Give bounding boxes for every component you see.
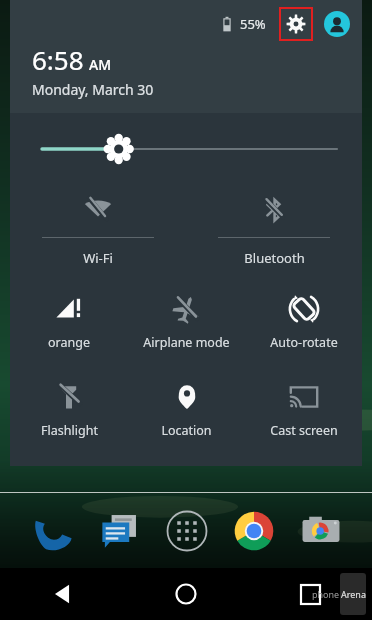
button[interactable]: orange	[10, 280, 128, 368]
button[interactable]: Phone	[18, 501, 86, 561]
staticText: Bluetooth	[244, 249, 305, 267]
staticText: 6:58	[32, 42, 84, 77]
button[interactable]: All apps	[153, 501, 220, 561]
staticText: Arena	[341, 588, 366, 600]
button[interactable]: Back	[0, 568, 124, 620]
button[interactable]: User profile	[324, 11, 350, 37]
staticText: orange	[48, 334, 90, 351]
staticText: 55%	[240, 15, 266, 33]
staticText: Flashlight	[41, 422, 98, 439]
button[interactable]: Chrome	[220, 501, 287, 561]
button[interactable]: Location	[128, 368, 245, 456]
staticText: Airplane mode	[143, 334, 230, 351]
button[interactable]: Flashlight	[10, 368, 128, 456]
button[interactable]: Camera	[287, 501, 354, 561]
button[interactable]: Messages	[86, 501, 153, 561]
button[interactable]: Auto-rotate	[245, 280, 362, 368]
button[interactable]: Wi-Fi	[10, 185, 186, 280]
button[interactable]: Recent apps	[248, 568, 372, 620]
staticText: Location	[161, 422, 212, 439]
button[interactable]: Brightness	[10, 113, 362, 185]
staticText: phone	[312, 588, 340, 600]
staticText: AM	[89, 55, 112, 74]
button[interactable]: Home	[124, 568, 248, 620]
staticText: Monday, March 30	[32, 80, 154, 99]
staticText: Auto-rotate	[270, 334, 338, 351]
button[interactable]: Bluetooth	[186, 185, 362, 280]
staticText: Cast screen	[270, 422, 338, 439]
button[interactable]: Cast screen	[245, 368, 362, 456]
button[interactable]: Airplane mode	[128, 280, 245, 368]
button[interactable]: Settings	[280, 8, 312, 40]
staticText: Wi-Fi	[83, 249, 113, 267]
